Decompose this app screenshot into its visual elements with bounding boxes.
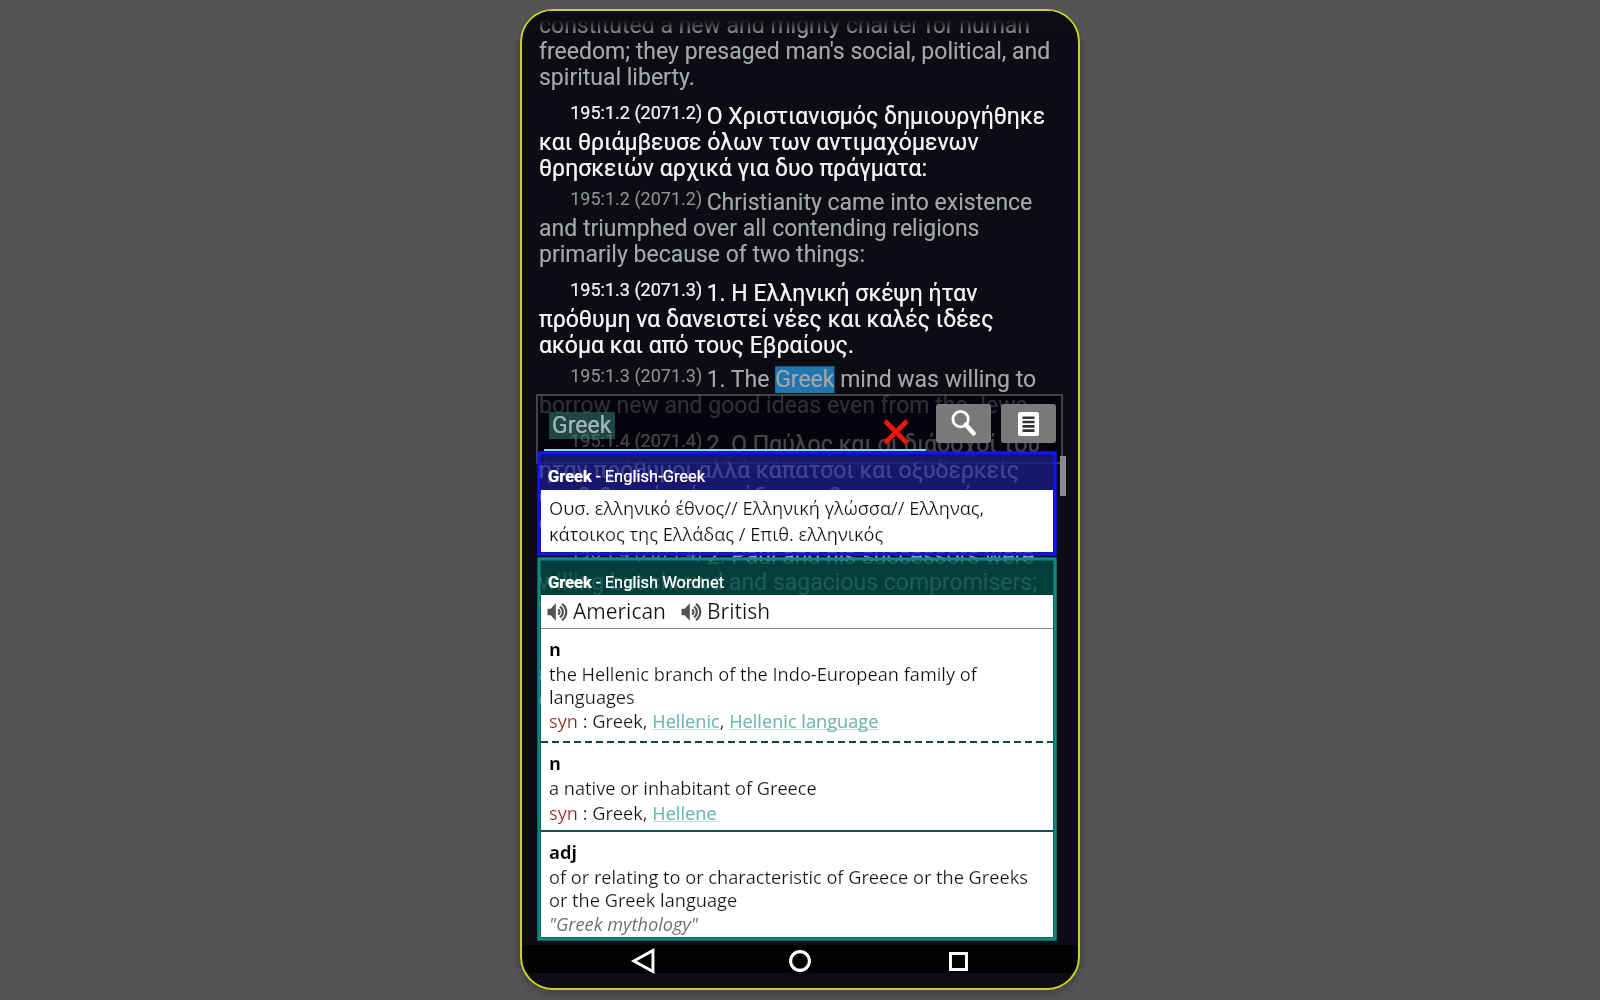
button[interactable]: Back bbox=[619, 947, 667, 975]
staticText: 195:1.2 (2071.2) Ο Χριστιανισμός δημιουρ… bbox=[539, 102, 1055, 182]
staticText: Greek bbox=[548, 467, 592, 486]
staticText: 195:1.3 (2071.3) 1. The Greek mind was w… bbox=[539, 365, 1055, 419]
staticText: n bbox=[549, 751, 561, 776]
button[interactable]: Search bbox=[936, 404, 991, 443]
staticText: Ουσ. ελληνικό έθνος// Ελληνική γλώσσα// … bbox=[549, 496, 1061, 546]
staticText: Greek bbox=[548, 573, 592, 592]
staticText: constituted a new and mighty charter for… bbox=[539, 12, 1055, 91]
staticText: syn : Greek, Hellene bbox=[549, 801, 717, 826]
button[interactable]: Home bbox=[776, 947, 824, 975]
staticText: - English-Greek bbox=[592, 467, 706, 486]
button[interactable]: Clear search bbox=[881, 417, 911, 447]
staticText: 195:1.5 (2071.5) 3. Αλλά το μεγαλύτερο λ… bbox=[539, 633, 1055, 713]
staticText: 195:1.4 (2071.4) 2. Ο Παύλος και οι διάδ… bbox=[539, 430, 1055, 536]
staticText: 195:1.3 (2071.3) 1. Η Ελληνική σκέψη ήτα… bbox=[539, 279, 1055, 359]
staticText: a native or inhabitant of Greece bbox=[549, 776, 817, 801]
staticText: - English Wordnet bbox=[592, 573, 725, 592]
staticText: "Greek mythology" bbox=[549, 912, 698, 937]
staticText: of or relating to or characteristic of G… bbox=[549, 865, 1049, 912]
button[interactable]: Recent apps bbox=[934, 947, 982, 975]
staticText: the Hellenic branch of the Indo-European… bbox=[549, 662, 1049, 709]
staticText: 195:1.2 (2071.2) Christianity came into … bbox=[539, 188, 1055, 268]
staticText: Greek bbox=[552, 412, 612, 439]
staticText: 195:1.4 (2071.4) 2. Paul and his success… bbox=[539, 542, 1055, 622]
staticText: adj bbox=[549, 840, 578, 865]
staticText: n bbox=[549, 637, 561, 662]
button[interactable]: Word list bbox=[1001, 404, 1056, 443]
staticText: American bbox=[573, 597, 667, 626]
staticText: syn : Greek, Hellenic, Hellenic language bbox=[549, 709, 879, 734]
staticText: British bbox=[707, 597, 771, 626]
